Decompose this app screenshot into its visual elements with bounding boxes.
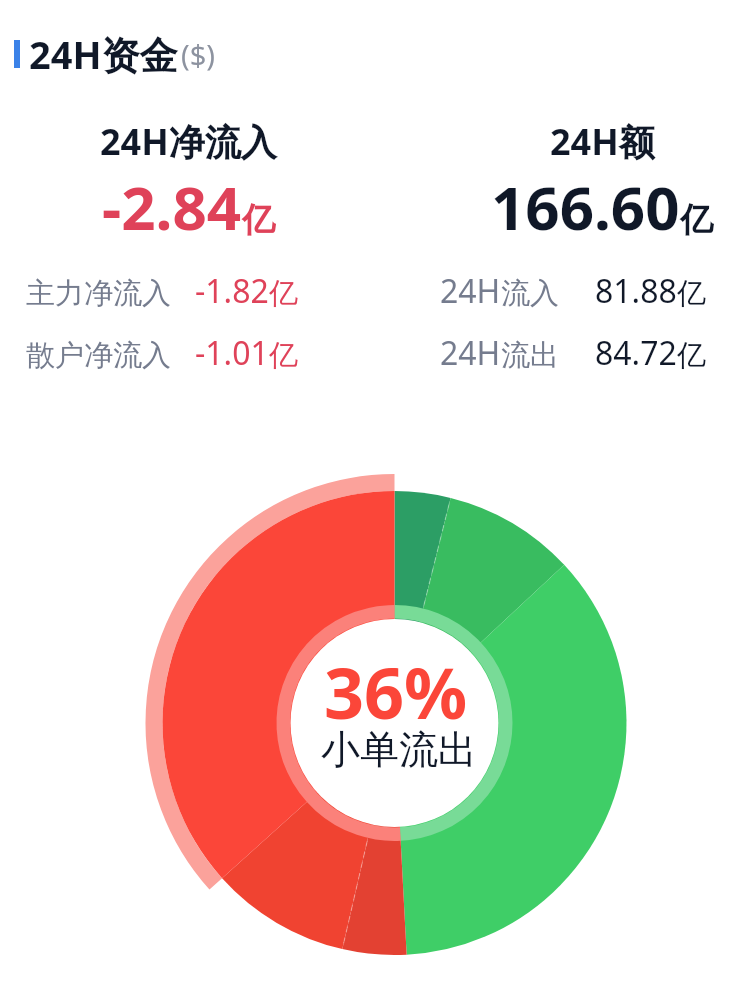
staticText: 亿 — [269, 337, 298, 374]
staticText: 24H净流入 — [100, 117, 277, 166]
button[interactable]: 24H — [440, 330, 706, 374]
staticText: -1.01 — [195, 331, 269, 375]
button[interactable]: 24H — [440, 268, 706, 312]
button[interactable]: 散户净流入 — [26, 330, 298, 374]
staticText: 亿 — [677, 337, 706, 374]
staticText: 散户净流入 — [26, 337, 171, 374]
staticText: -2.84 — [102, 166, 242, 248]
staticText: -1.82 — [195, 269, 269, 313]
staticText: 81.88 — [595, 269, 677, 313]
staticText: 亿 — [242, 199, 275, 241]
button[interactable]: 24小时资金流向环形图，小单流出 36% — [0, 0, 750, 993]
button[interactable]: 主力净流入 — [26, 268, 298, 312]
staticText: 24H资金 — [29, 28, 178, 80]
staticText: 36% — [324, 644, 468, 739]
staticText: 主力净流入 — [26, 275, 171, 312]
button[interactable]: 24H资金 — [14, 28, 215, 80]
staticText: 亿 — [677, 275, 706, 312]
staticText: 流入 — [501, 275, 559, 312]
staticText: 24H — [440, 331, 501, 375]
staticText: 小单流出 — [321, 725, 477, 774]
staticText: 84.72 — [595, 331, 677, 375]
staticText: 166.60 — [491, 166, 680, 248]
staticText: 24H额 — [550, 117, 655, 166]
staticText: 亿 — [680, 199, 713, 241]
button[interactable]: 24H净流入 — [0, 117, 377, 248]
button[interactable]: 24H额 — [429, 117, 750, 248]
staticText: 亿 — [269, 275, 298, 312]
staticText: ($) — [181, 35, 215, 74]
staticText: 流出 — [501, 337, 559, 374]
staticText: 24H — [440, 269, 501, 313]
